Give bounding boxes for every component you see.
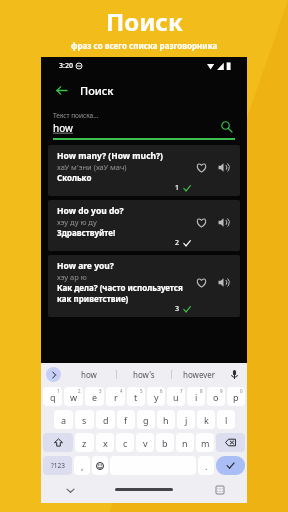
button[interactable]: p <box>227 387 245 406</box>
button[interactable]: f <box>117 410 135 429</box>
button[interactable]: Play audio <box>213 272 233 292</box>
button[interactable]: j <box>177 410 195 429</box>
button[interactable]: v <box>136 433 154 452</box>
button[interactable]: l <box>217 410 235 429</box>
staticText: how's <box>133 369 155 380</box>
staticText: o <box>213 391 219 403</box>
button[interactable]: Back <box>51 80 71 100</box>
button[interactable]: How are you? <box>48 255 240 317</box>
staticText: 0 <box>240 388 243 394</box>
button[interactable]: ?123 <box>43 456 72 475</box>
staticText: Поиск <box>80 83 114 98</box>
button[interactable]: Favorite <box>191 272 211 292</box>
staticText: хаУ м'эни (хаУ мач) <box>57 162 127 172</box>
staticText: 1 <box>175 183 180 193</box>
staticText: 9 <box>220 388 223 394</box>
button[interactable]: q <box>43 387 62 406</box>
staticText: . <box>205 460 208 472</box>
button[interactable]: Hide keyboard <box>63 483 77 497</box>
staticText: y <box>154 391 159 403</box>
staticText: a <box>61 414 67 426</box>
button[interactable]: t <box>127 387 145 406</box>
button[interactable]: w <box>64 387 83 406</box>
staticText: How many? (How much?) <box>57 150 163 162</box>
staticText: 7 <box>180 388 183 394</box>
button[interactable]: u <box>167 387 185 406</box>
staticText: f <box>124 414 128 426</box>
button[interactable]: z <box>75 433 94 452</box>
button[interactable]: Shift <box>43 433 73 452</box>
button[interactable]: Play audio <box>213 157 233 177</box>
button[interactable]: Switch keyboard <box>213 483 227 497</box>
staticText: q <box>50 391 56 403</box>
staticText: How do you do? <box>57 205 124 217</box>
staticText: 5 <box>140 388 143 394</box>
staticText: d <box>103 414 109 426</box>
staticText: p <box>233 391 239 403</box>
button[interactable]: however <box>172 363 226 385</box>
button[interactable]: o <box>207 387 225 406</box>
staticText: l <box>225 414 228 426</box>
staticText: s <box>82 414 87 426</box>
staticText: How are you? <box>57 260 114 272</box>
staticText: 8 <box>200 388 203 394</box>
staticText: 3 <box>175 304 180 314</box>
staticText: Как дела? (часто используется <box>57 282 183 293</box>
staticText: m <box>201 437 210 449</box>
button[interactable]: s <box>75 410 94 429</box>
button[interactable]: k <box>197 410 215 429</box>
staticText: 2 <box>78 388 81 394</box>
staticText: u <box>173 391 179 403</box>
button[interactable]: Backspace <box>216 433 245 452</box>
staticText: , <box>81 460 84 472</box>
staticText: w <box>70 391 78 403</box>
button[interactable]: r <box>106 387 125 406</box>
button[interactable]: Favorite <box>191 212 211 232</box>
button[interactable]: m <box>196 433 214 452</box>
button[interactable]: g <box>137 410 155 429</box>
button[interactable]: Enter <box>216 456 245 475</box>
button[interactable]: Expand suggestions <box>46 367 61 382</box>
staticText: e <box>92 391 98 403</box>
button[interactable]: d <box>96 410 115 429</box>
button[interactable]: how's <box>117 363 171 385</box>
button[interactable]: Play audio <box>213 212 233 232</box>
button[interactable]: n <box>176 433 194 452</box>
button[interactable]: c <box>116 433 134 452</box>
button[interactable]: , <box>74 456 90 475</box>
staticText: 2 <box>175 238 180 248</box>
staticText: z <box>82 437 87 449</box>
button[interactable]: Voice input <box>226 366 242 382</box>
staticText: t <box>134 391 138 403</box>
staticText: Поиск <box>106 5 183 38</box>
button[interactable]: y <box>147 387 165 406</box>
staticText: x <box>103 437 108 449</box>
staticText: b <box>162 437 168 449</box>
button[interactable]: a <box>54 410 73 429</box>
staticText: j <box>185 414 188 426</box>
button[interactable]: How many? (How much?) <box>48 145 240 196</box>
button[interactable]: how <box>61 363 116 385</box>
staticText: как приветствие) <box>57 293 129 304</box>
staticText: Сколько <box>57 172 92 183</box>
button[interactable]: How do you do? <box>48 200 240 251</box>
staticText: n <box>182 437 188 449</box>
button[interactable]: Emoji <box>92 456 108 475</box>
staticText: v <box>143 437 148 449</box>
button[interactable]: e <box>85 387 104 406</box>
staticText: хэу ар ю <box>57 272 87 282</box>
button[interactable]: h <box>157 410 175 429</box>
button[interactable]: i <box>187 387 205 406</box>
button[interactable]: b <box>156 433 174 452</box>
staticText: h <box>163 414 169 426</box>
button[interactable]: Search <box>217 117 235 135</box>
staticText: c <box>123 437 128 449</box>
button[interactable]: . <box>198 456 214 475</box>
staticText: хэу ду ю ду <box>57 217 97 227</box>
staticText: ?123 <box>51 461 65 470</box>
staticText: фраз со всего списка разговорника <box>71 40 218 51</box>
button[interactable]: Favorite <box>191 157 211 177</box>
button[interactable]: x <box>96 433 114 452</box>
staticText: Здравствуйте! <box>57 227 116 238</box>
